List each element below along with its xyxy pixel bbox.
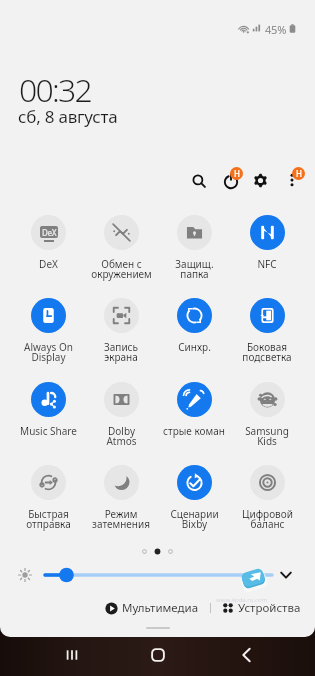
button[interactable]: Back [225, 634, 267, 676]
button[interactable]: Быстрая отправка [12, 465, 84, 531]
staticText: Always On Display [24, 340, 73, 364]
staticText: DeX [39, 257, 58, 271]
staticText: Dolby Atmos [106, 424, 137, 448]
staticText: Боковая подсветка [242, 340, 292, 364]
button[interactable]: Search [187, 169, 211, 193]
staticText: 45% [265, 22, 287, 35]
staticText: Обмен с окружением [91, 257, 152, 281]
button[interactable]: Режим затемнения [85, 465, 157, 531]
button[interactable]: Samsung Kids [231, 382, 303, 448]
button[interactable]: Синхр. [158, 298, 230, 354]
button[interactable]: Home [137, 634, 179, 676]
button[interactable]: Сценарии Bixby [158, 465, 230, 531]
staticText: Быстрая отправка [26, 507, 71, 531]
staticText: NFC [257, 257, 277, 271]
button[interactable]: DeX [12, 215, 84, 271]
staticText: DeX [42, 227, 57, 238]
button[interactable]: Боковая подсветка [231, 298, 303, 364]
staticText: 00:32 [19, 68, 91, 112]
staticText: Music Share [20, 424, 77, 438]
button[interactable]: Dolby Atmos [85, 382, 157, 448]
staticText: www.4pda.ru.com [216, 596, 268, 604]
button[interactable]: Power off [218, 168, 244, 194]
button[interactable]: NFC [231, 215, 303, 271]
button[interactable]: Music Share [12, 382, 84, 438]
staticText: Samsung Kids [245, 424, 289, 448]
staticText: Устройства [238, 600, 301, 616]
button[interactable]: Обмен с окружением [85, 215, 157, 281]
button[interactable]: Brightness [40, 564, 276, 586]
button[interactable]: More options [281, 169, 303, 191]
button[interactable]: Цифровой баланс [231, 465, 303, 531]
button[interactable]: Устройства [222, 600, 301, 616]
staticText: сб, 8 августа [18, 105, 118, 128]
button[interactable]: Мультимедиа [105, 600, 199, 616]
staticText: Цифровой баланс [242, 507, 293, 531]
button[interactable]: Settings [249, 169, 272, 192]
staticText: Запись экрана [104, 340, 138, 364]
staticText: Режим затемнения [92, 507, 150, 531]
staticText: Синхр. [178, 340, 211, 354]
staticText: Сценарии Bixby [170, 507, 219, 531]
staticText: H [296, 168, 302, 179]
button[interactable]: Защищ. папка [158, 215, 230, 281]
button[interactable]: Expand brightness controls [275, 564, 297, 586]
button[interactable]: Запись экрана [85, 298, 157, 364]
button[interactable]: Always On Display [12, 298, 84, 364]
button[interactable]: стрые коман [158, 382, 230, 438]
staticText: Защищ. папка [175, 257, 214, 281]
staticText: Мультимедиа [122, 600, 199, 616]
staticText: стрые коман [163, 424, 225, 438]
staticText: H [234, 168, 240, 179]
button[interactable]: Recent apps [51, 634, 93, 676]
